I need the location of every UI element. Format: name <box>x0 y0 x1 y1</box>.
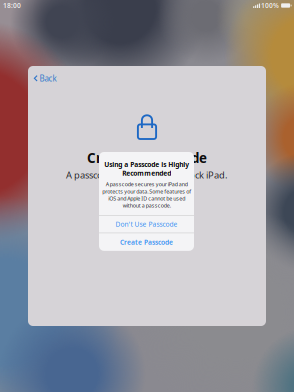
staticText: Don't Use Passcode <box>115 220 177 229</box>
staticText: Using a Passcode is Highly Recommended <box>104 160 189 178</box>
staticText: Create a Passcode <box>87 149 207 167</box>
staticText: Back <box>39 73 56 84</box>
staticText: A passcode secures your iPad and protect… <box>102 181 191 209</box>
staticText: Create Passcode <box>120 238 173 246</box>
staticText: 18:00 <box>3 1 21 10</box>
button[interactable]: Don't Use Passcode <box>99 216 194 233</box>
button[interactable]: Back <box>29 69 60 88</box>
staticText: 100% <box>261 1 279 10</box>
staticText: A passcode is required to unlock iPad. <box>66 169 228 181</box>
button[interactable]: Create Passcode <box>99 233 194 251</box>
